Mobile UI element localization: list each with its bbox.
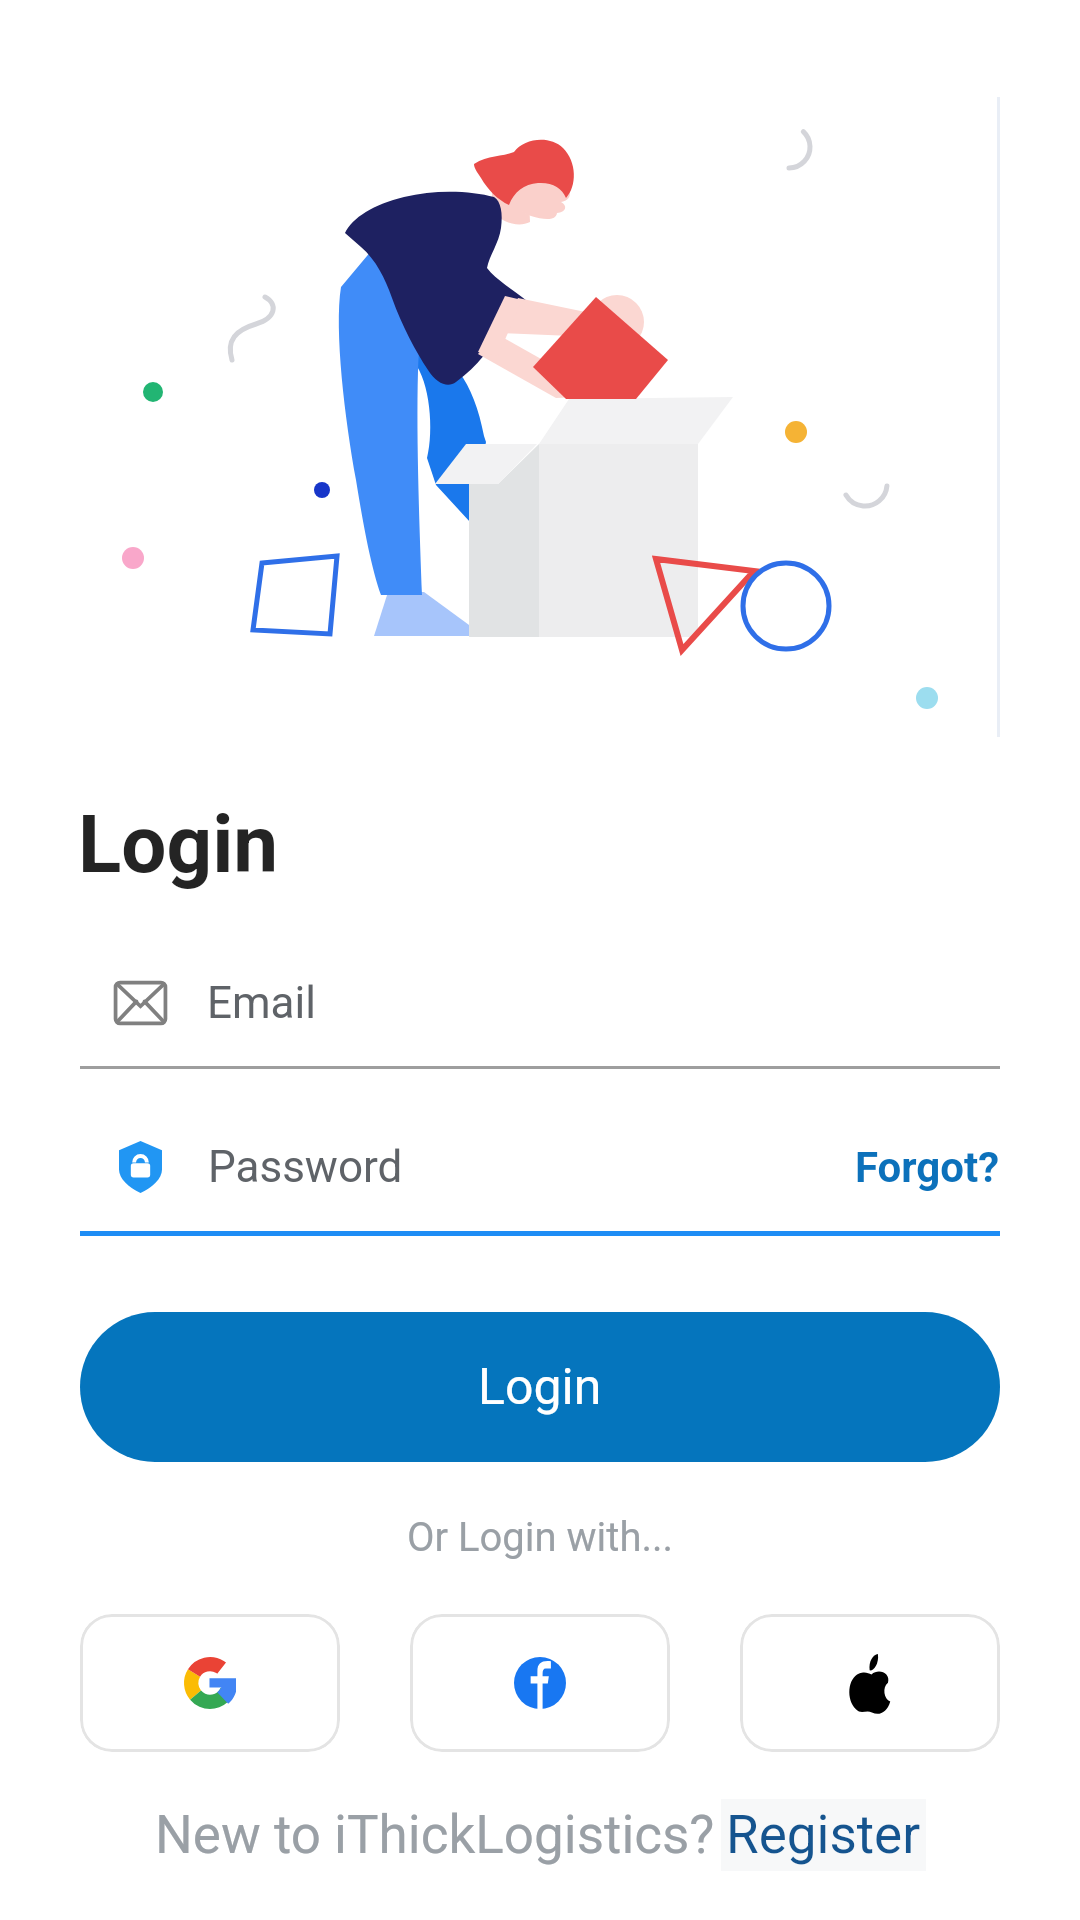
button[interactable]: Register (721, 1799, 926, 1871)
staticText: Password (208, 1141, 403, 1193)
staticText: Forgot? (855, 1143, 1000, 1192)
button[interactable]: Forgot? (855, 1143, 1000, 1192)
button[interactable]: Password (80, 1122, 1000, 1212)
button[interactable]: Sign in with Google (80, 1614, 340, 1752)
button[interactable]: Sign in with Apple (740, 1614, 1000, 1752)
button[interactable]: Sign in with Facebook (410, 1614, 670, 1752)
staticText: Login (478, 1358, 602, 1417)
button[interactable]: Login (80, 1312, 1000, 1462)
button[interactable]: Email (80, 958, 1000, 1048)
staticText: New to iThickLogistics? (155, 1804, 715, 1866)
staticText: Register (726, 1804, 921, 1866)
staticText: Login (78, 798, 279, 892)
staticText: Email (207, 977, 316, 1029)
staticText: Or Login with... (0, 1514, 1080, 1561)
